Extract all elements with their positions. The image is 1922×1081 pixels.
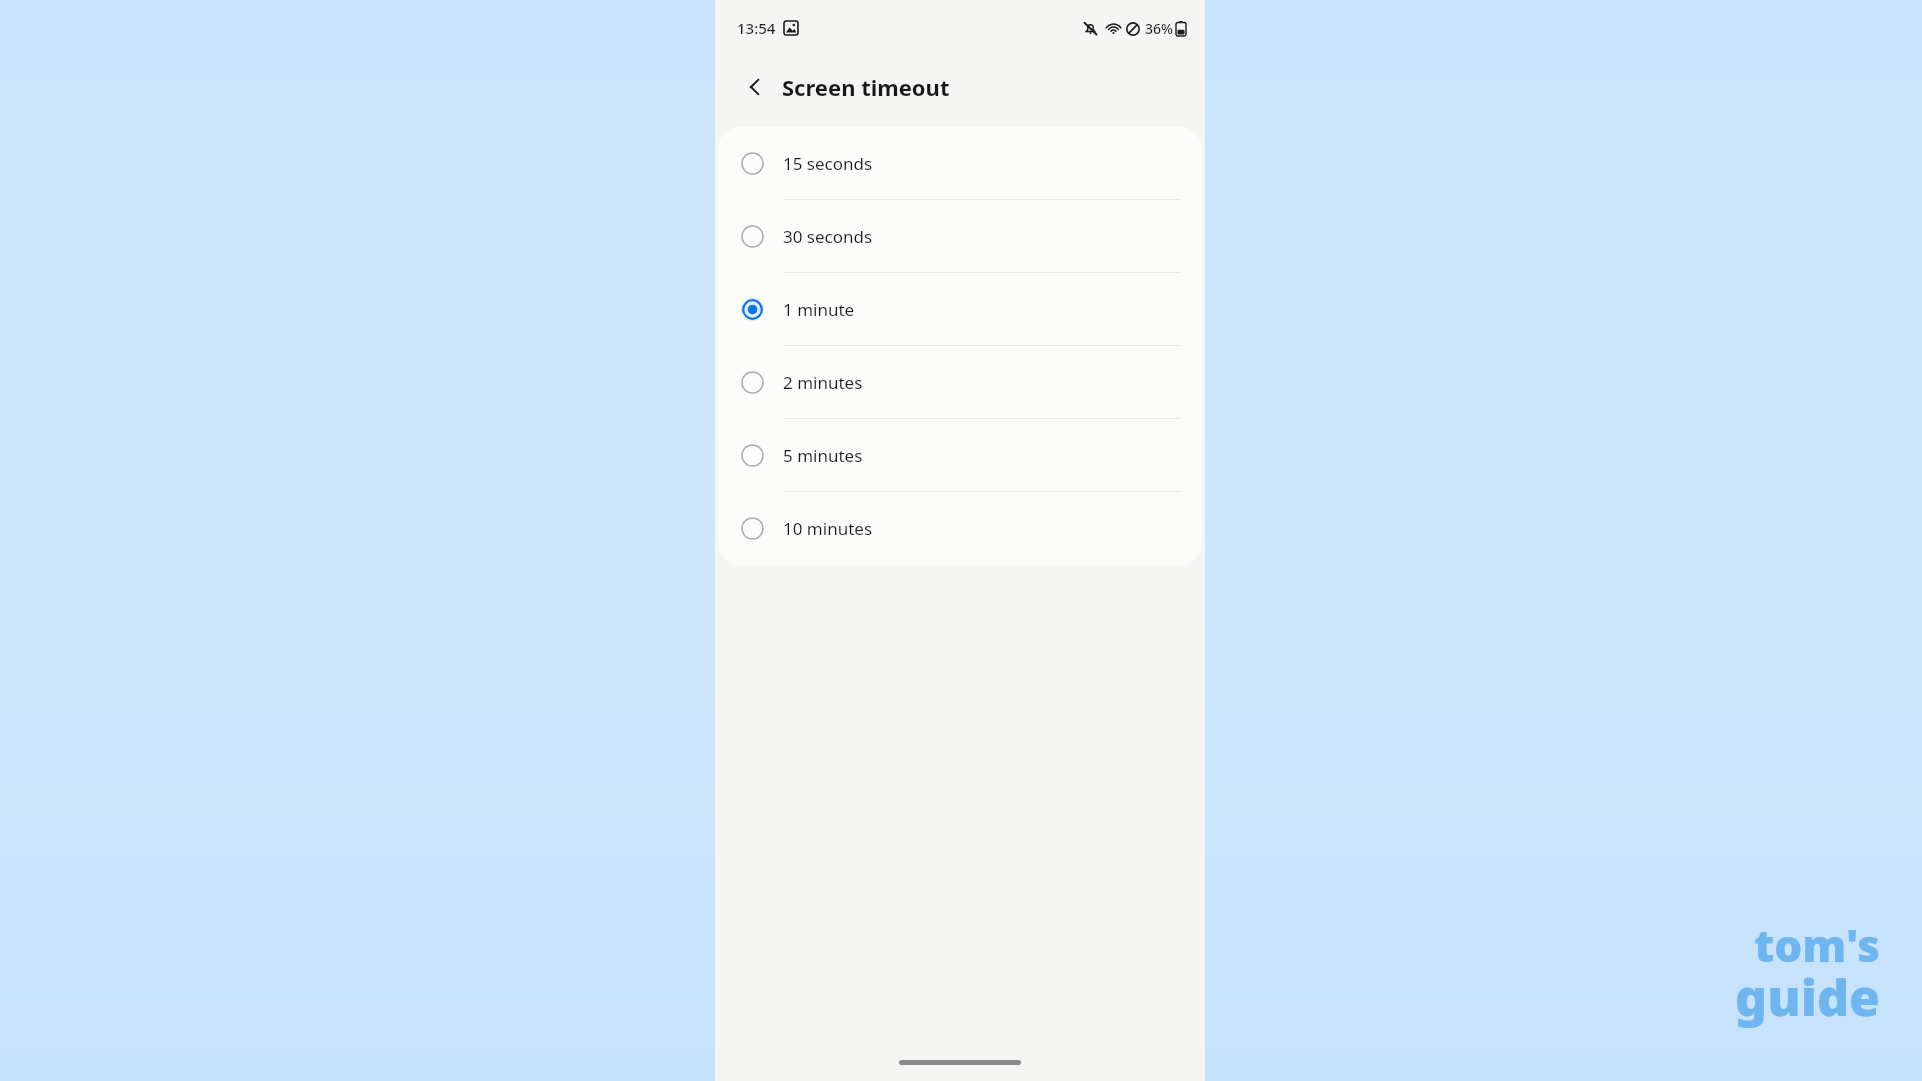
button[interactable]: 10 minutes (718, 492, 1202, 565)
staticText: 15 seconds (783, 152, 873, 175)
button[interactable]: 2 minutes (718, 346, 1202, 419)
staticText: 36% (1145, 19, 1173, 38)
staticText: guide (1735, 963, 1880, 1031)
staticText: 5 minutes (783, 444, 863, 467)
staticText: 10 minutes (783, 517, 873, 540)
staticText: 13:54 (737, 18, 776, 38)
staticText: 30 seconds (783, 225, 873, 248)
button[interactable]: Back (735, 67, 775, 107)
staticText: 1 minute (783, 298, 855, 321)
staticText: 2 minutes (783, 371, 863, 394)
button[interactable]: 5 minutes (718, 419, 1202, 492)
button[interactable]: 15 seconds (718, 127, 1202, 200)
button[interactable]: 1 minute (718, 273, 1202, 346)
staticText: Screen timeout (782, 72, 950, 102)
staticText: tom's (1753, 915, 1880, 975)
button[interactable]: 30 seconds (718, 200, 1202, 273)
